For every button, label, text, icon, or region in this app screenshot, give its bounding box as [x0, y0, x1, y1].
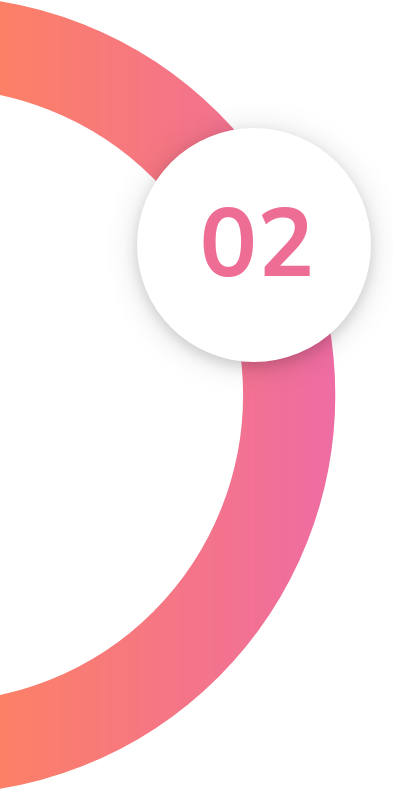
button[interactable]: Step 02: [137, 128, 371, 362]
staticText: 02: [199, 179, 315, 310]
